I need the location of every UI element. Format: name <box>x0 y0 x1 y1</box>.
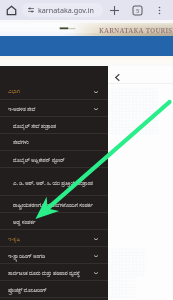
button[interactable]: ಇ-ಕೃಷಿ <box>0 230 108 247</box>
staticText: ಇ-ಕೃಷಿ <box>8 235 94 242</box>
staticText: ಅಡ್ಡ ಸಂಪರ್ಕ <box>13 218 98 225</box>
button[interactable]: More options <box>148 0 170 20</box>
button[interactable]: ವಿಭಾಗ <box>0 83 108 100</box>
staticText: ಪ್ರೊಜೆಕ್ಟ್ ಮೊನಿಟರಿಂಗ್ <box>8 286 98 293</box>
staticText: ಇ-ಸ್ಟ್ಯಾಂಪಿಂಗ್ ಅಂಗಡಿ <box>8 252 94 259</box>
staticText: ಸಾರ್ವಜನಿಕ ದೂರು ಮತ್ತು ಪರಿಹಾರ ವ್ಯವಸ್ಥೆ <box>8 269 94 276</box>
button[interactable]: ಸಾರ್ವಜನಿಕ ದೂರು ಮತ್ತು ಪರಿಹಾರ ವ್ಯವಸ್ಥೆ <box>0 264 108 281</box>
staticText: 5 <box>136 7 140 15</box>
staticText: karnataka.gov.in <box>38 5 94 15</box>
button[interactable]: New tab <box>103 0 126 20</box>
staticText: ಮೊಬೈಲ್ ಸೇವೆ ತಂತ್ರಾಂಶ <box>13 122 98 129</box>
button[interactable]: ರಾಷ್ಟ್ರೀಯಕರಣಗೊಂಡ ಸೇವೆಗಳೊಂದಿಗೆ ಸಂಪರ್ಕ <box>0 196 108 213</box>
staticText: ಇ-ಆಡಳಿತ ಸೇವೆ <box>8 105 94 112</box>
button[interactable]: ಇ-ಸ್ಟ್ಯಾಂಪಿಂಗ್ ಅಂಗಡಿ <box>0 247 108 264</box>
button[interactable]: karnataka.gov.in <box>22 3 103 17</box>
button[interactable]: ಮೊಬೈಲ್ ಸೇವೆ ತಂತ್ರಾಂಶ <box>0 117 108 134</box>
staticText: ಮೊಬೈಲ್ ಅಪ್ಲಿಕೇಶನ್ ಸ್ಟೋರ್ <box>13 156 98 163</box>
staticText: ವಿಭಾಗ <box>8 89 94 94</box>
button[interactable]: ಇ-ಆಡಳಿತ ಸೇವೆ <box>0 100 108 117</box>
button[interactable]: Switch tabs <box>126 0 148 20</box>
button[interactable]: ಪ್ರೊಜೆಕ್ಟ್ ಮೊನಿಟರಿಂಗ್ <box>0 281 108 298</box>
staticText: KARNATAKA TOURISM <box>99 26 173 35</box>
button[interactable]: ಸೇವೆಗಳು <box>0 134 108 151</box>
button[interactable]: Back <box>110 70 124 84</box>
staticText: ಸೇವೆಗಳು <box>13 140 98 145</box>
button[interactable]: ಅಡ್ಡ ಸಂಪರ್ಕ <box>0 213 108 230</box>
staticText: ಎ. ಡಿ. ಆರ್. ಆರ್. ಸಿ. ಯು ಪ್ರತಿಕ್ರಿಯೆ ತಂತ್… <box>13 179 98 186</box>
button[interactable]: ಮೊಬೈಲ್ ಅಪ್ಲಿಕೇಶನ್ ಸ್ಟೋರ್ <box>0 151 108 168</box>
staticText: ರಾಷ್ಟ್ರೀಯಕರಣಗೊಂಡ ಸೇವೆಗಳೊಂದಿಗೆ ಸಂಪರ್ಕ <box>13 201 98 208</box>
button[interactable]: ಎ. ಡಿ. ಆರ್. ಆರ್. ಸಿ. ಯು ಪ್ರತಿಕ್ರಿಯೆ ತಂತ್… <box>0 168 108 196</box>
button[interactable]: Home <box>0 0 22 20</box>
